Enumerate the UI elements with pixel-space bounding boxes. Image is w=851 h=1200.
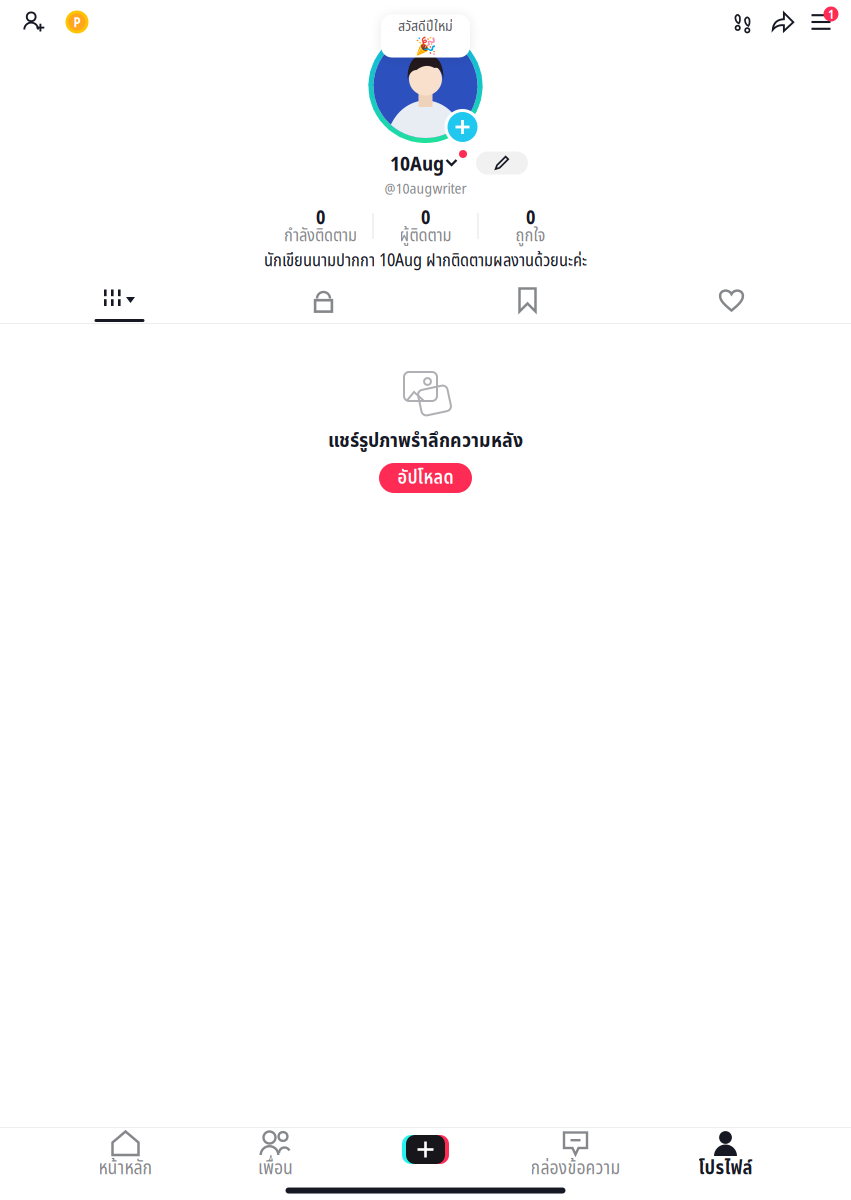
button[interactable]: Create <box>350 1128 500 1181</box>
staticText: 1 <box>828 6 834 22</box>
button[interactable]: Private <box>221 277 425 323</box>
staticText: ผู้ติดตาม <box>399 223 451 249</box>
button[interactable]: โปรไฟล์ <box>650 1128 800 1181</box>
button[interactable]: Saved <box>425 277 629 323</box>
button[interactable]: Liked <box>629 277 833 323</box>
staticText: 0 <box>526 204 535 230</box>
button[interactable]: Videos <box>17 277 221 323</box>
button[interactable]: 0 <box>268 206 372 246</box>
staticText: 🎉 <box>414 36 436 56</box>
button[interactable]: เพื่อน <box>200 1128 350 1181</box>
staticText: 0 <box>316 204 325 230</box>
staticText: @10augwriter <box>384 178 466 198</box>
staticText: กำลังติดตาม <box>284 223 357 249</box>
staticText: แชร์รูปภาพรำลึกความหลัง <box>328 426 523 456</box>
staticText: สวัสดีปีใหม่ <box>398 15 453 38</box>
staticText: กล่องข้อความ <box>530 1154 620 1183</box>
button[interactable]: กล่องข้อความ <box>500 1128 650 1181</box>
button[interactable]: Add friends <box>12 0 56 44</box>
button[interactable]: 0 <box>478 206 582 246</box>
staticText: เพื่อน <box>258 1154 293 1183</box>
staticText: ถูกใจ <box>515 223 545 249</box>
button[interactable]: Rewards <box>56 0 98 44</box>
staticText: 0 <box>421 204 430 230</box>
button[interactable]: 0 <box>373 206 477 246</box>
button[interactable]: หน้าหลัก <box>50 1128 200 1181</box>
staticText: P <box>73 13 80 31</box>
button[interactable]: Settings and privacy <box>803 0 839 44</box>
staticText: 10Aug <box>390 149 444 177</box>
staticText: อัปโหลด <box>397 464 453 492</box>
staticText: โปรไฟล์ <box>698 1154 752 1183</box>
button[interactable]: อัปโหลด <box>379 463 472 493</box>
button[interactable]: Edit profile <box>476 150 528 176</box>
button[interactable]: Share profile <box>763 0 803 44</box>
staticText: นักเขียนนามปากกา 10Aug ฝากติดตามผลงานด้ว… <box>264 248 587 274</box>
staticText: หน้าหลัก <box>98 1154 152 1183</box>
button[interactable]: Activity <box>723 0 763 44</box>
